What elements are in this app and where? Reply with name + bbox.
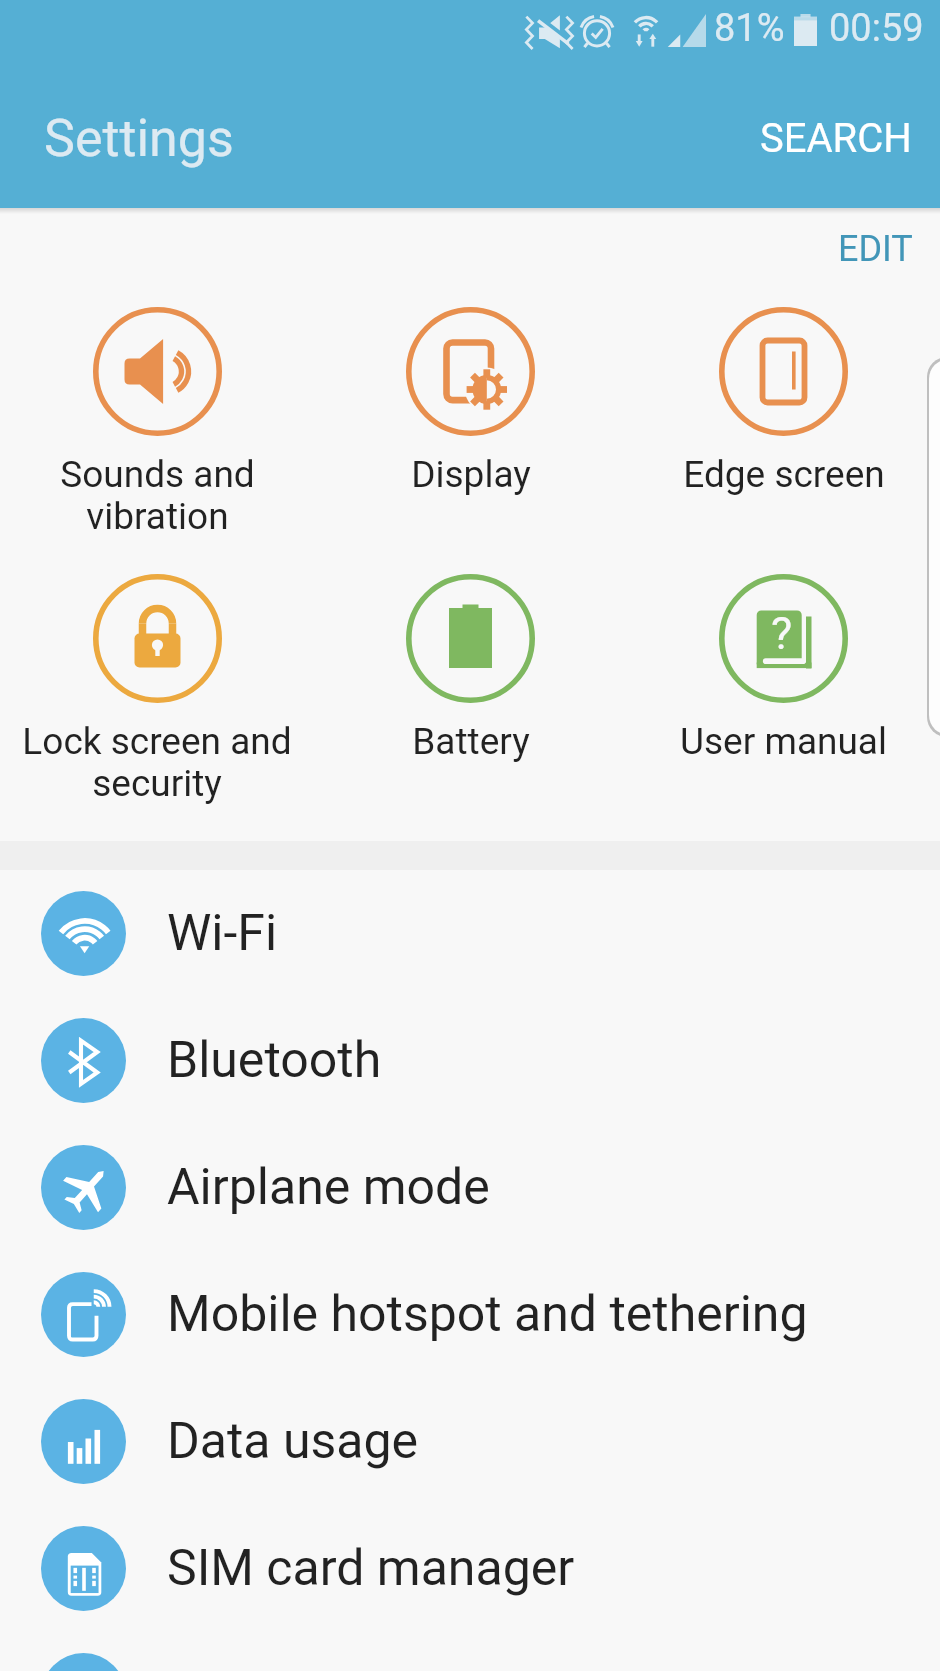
button[interactable]: Sounds and vibration (0, 307, 314, 538)
button[interactable]: ? (627, 574, 940, 763)
button[interactable]: Wi-Fi (0, 870, 940, 997)
button[interactable]: Data usage (0, 1378, 940, 1505)
staticText: Edge screen (683, 453, 885, 496)
staticText: User manual (680, 720, 887, 763)
staticText: Settings (44, 108, 234, 169)
button[interactable]: Mobile hotspot and tethering (0, 1251, 940, 1378)
staticText: Wi-Fi (167, 904, 278, 963)
button[interactable]: EDIT (808, 208, 940, 284)
button[interactable]: Battery (314, 574, 627, 763)
button[interactable]: Lock screen and security (0, 574, 314, 805)
staticText: Sounds and vibration (60, 453, 255, 538)
staticText: Bluetooth (167, 1031, 382, 1090)
staticText: Airplane mode (167, 1158, 490, 1217)
staticText: ? (771, 607, 793, 660)
staticText: Battery (412, 720, 530, 763)
staticText: SIM card manager (167, 1539, 575, 1598)
button[interactable]: Edge screen (627, 307, 940, 496)
button[interactable]: Display (314, 307, 627, 496)
staticText: 00:59 (829, 6, 924, 51)
button[interactable]: Open Edge panel (927, 357, 940, 737)
button[interactable]: Airplane mode (0, 1124, 940, 1251)
button[interactable]: Bluetooth (0, 997, 940, 1124)
staticText: Mobile hotspot and tethering (167, 1285, 808, 1344)
button[interactable]: SIM card manager (0, 1505, 940, 1632)
staticText: Lock screen and security (22, 720, 292, 805)
staticText: Data usage (167, 1412, 419, 1471)
staticText: 81% (714, 6, 785, 51)
staticText: SEARCH (760, 115, 912, 162)
staticText: EDIT (838, 228, 913, 270)
button[interactable]: SEARCH (726, 93, 940, 184)
button[interactable]: More connection settings (0, 1632, 940, 1671)
staticText: Display (411, 453, 531, 496)
